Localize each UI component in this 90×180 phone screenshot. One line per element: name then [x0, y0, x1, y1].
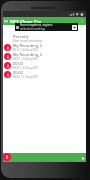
button[interactable]: Record anywhere, anytime — [15, 23, 78, 31]
button[interactable]: More options — [79, 18, 85, 24]
staticText: MP3 Player Pro — [10, 18, 42, 24]
staticText: 00:02 — [13, 70, 23, 75]
button[interactable]: 00:03 — [3, 61, 86, 70]
staticText: 00:12 | 24 Aug 2021 — [13, 48, 39, 52]
staticText: Recently — [13, 34, 29, 39]
button[interactable]: Play — [80, 155, 86, 161]
button[interactable]: App logo — [3, 18, 9, 24]
button[interactable]: Next — [72, 25, 77, 30]
button[interactable]: 00:02 — [3, 70, 86, 79]
button[interactable]: My Recording_3 — [3, 43, 86, 52]
staticText: 00:03 | 22 Aug 2021 — [13, 66, 39, 70]
button[interactable]: Record — [3, 153, 11, 161]
button[interactable]: My Recording_2 — [3, 52, 86, 61]
staticText: 00:27 | 23 Aug 2021 — [13, 57, 39, 61]
staticText: unlimited recordings — [20, 27, 46, 31]
staticText: 00:02 | 21 Aug 2021 — [13, 75, 39, 79]
staticText: My Recording_3 — [13, 43, 43, 48]
staticText: My Recording_2 — [13, 52, 43, 57]
staticText: Most recent recordings — [13, 39, 43, 43]
button[interactable]: Recently — [3, 34, 86, 43]
staticText: Record anywhere, anytime — [20, 23, 53, 27]
staticText: 00:03 — [13, 61, 23, 66]
